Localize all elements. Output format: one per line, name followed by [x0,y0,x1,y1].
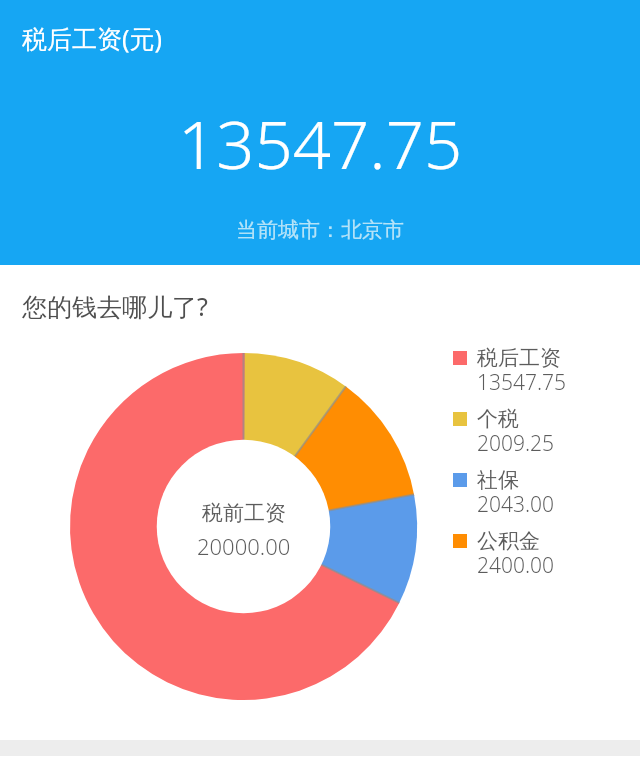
staticText: 公积金 [477,528,540,554]
staticText: 社保 [477,467,519,493]
staticText: 个税 [477,406,519,432]
button[interactable]: 社保 [453,464,623,525]
staticText: 13547.75 [178,97,463,188]
staticText: 2043.00 [477,490,555,519]
staticText: 您的钱去哪儿了? [22,289,208,323]
button[interactable]: 当前城市：北京市 [236,217,404,243]
staticText: 税后工资(元) [22,21,163,55]
other: Salary breakdown pie chart [70,353,417,700]
staticText: 税后工资 [477,345,561,371]
button[interactable]: 税后工资 [453,342,623,403]
staticText: 2400.00 [477,551,555,580]
button[interactable]: 个税 [453,403,623,464]
button[interactable]: 公积金 [453,525,623,586]
staticText: 20000.00 [197,531,291,561]
staticText: 2009.25 [477,429,555,458]
staticText: 13547.75 [477,368,567,397]
staticText: 当前城市：北京市 [236,217,404,243]
staticText: 税前工资 [202,500,286,526]
